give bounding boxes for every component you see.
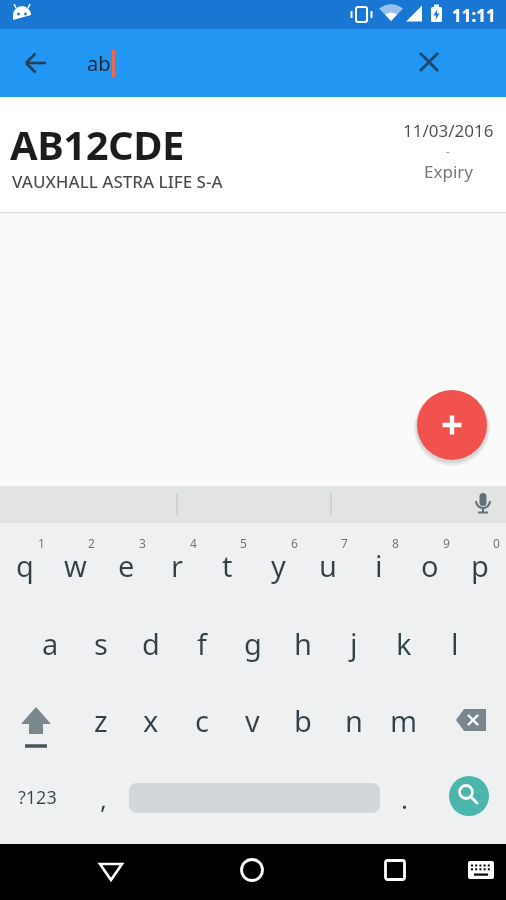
button[interactable] [371, 846, 419, 894]
staticText: 11:11 [452, 4, 496, 27]
button[interactable] [417, 390, 487, 460]
button[interactable]: h [278, 607, 328, 679]
staticText: k [396, 624, 412, 663]
staticText: f [197, 624, 207, 663]
staticText: t [222, 546, 233, 585]
staticText: m [390, 701, 418, 740]
staticText: r [171, 546, 183, 585]
button[interactable]: s [76, 607, 126, 679]
staticText: q [16, 546, 34, 585]
staticText: 3 [139, 535, 146, 551]
staticText: b [294, 701, 312, 740]
staticText: . [401, 781, 408, 816]
button[interactable]: o [405, 529, 455, 601]
button[interactable]: e [101, 529, 151, 601]
staticText: 9 [443, 535, 450, 551]
button[interactable]: a [25, 607, 75, 679]
staticText: ab [87, 50, 111, 77]
button[interactable]: y [253, 529, 303, 601]
staticText: 6 [291, 535, 298, 551]
staticText: - [446, 143, 450, 157]
staticText: 7 [341, 535, 348, 551]
staticText: u [319, 546, 337, 585]
staticText: i [375, 546, 383, 585]
button[interactable] [449, 776, 489, 816]
button[interactable]: . [382, 766, 426, 830]
button[interactable]: f [177, 607, 227, 679]
button[interactable]: n [329, 684, 379, 756]
button[interactable] [445, 685, 497, 757]
button[interactable]: x [126, 684, 176, 756]
staticText: 4 [190, 535, 197, 551]
staticText: 11/03/2016 [403, 119, 494, 142]
staticText: h [294, 624, 312, 663]
button[interactable]: d [126, 607, 176, 679]
button[interactable]: v [227, 684, 277, 756]
staticText: o [421, 546, 439, 585]
staticText: v [245, 701, 260, 740]
button[interactable] [228, 846, 276, 894]
button[interactable]: u [303, 529, 353, 601]
staticText: ?123 [18, 785, 57, 810]
button[interactable]: c [177, 684, 227, 756]
staticText: AB12CDE [10, 117, 184, 165]
button[interactable]: i [354, 529, 404, 601]
staticText: p [471, 546, 489, 585]
button[interactable] [12, 39, 60, 87]
staticText: z [94, 701, 108, 740]
button[interactable] [87, 846, 135, 894]
staticText: j [350, 624, 358, 663]
button[interactable]: j [329, 607, 379, 679]
button[interactable]: l [430, 607, 480, 679]
staticText: n [345, 701, 363, 740]
button[interactable]: z [76, 684, 126, 756]
staticText: 8 [392, 535, 399, 551]
staticText: 0 [493, 535, 500, 551]
button[interactable] [457, 846, 505, 894]
button[interactable]: , [81, 766, 125, 830]
staticText: w [64, 546, 87, 585]
button[interactable] [405, 39, 453, 87]
button[interactable]: t [202, 529, 252, 601]
button[interactable]: g [228, 607, 278, 679]
staticText: Expiry [424, 160, 473, 183]
staticText: 2 [88, 535, 95, 551]
staticText: g [244, 624, 262, 663]
button[interactable]: k [379, 607, 429, 679]
staticText: e [118, 546, 135, 585]
staticText: d [142, 624, 160, 663]
button[interactable]: m [379, 684, 429, 756]
staticText: c [195, 701, 209, 740]
button[interactable]: b [278, 684, 328, 756]
staticText: l [451, 624, 459, 663]
button[interactable]: AB12CDE [0, 97, 506, 212]
staticText: y [271, 546, 286, 585]
staticText: VAUXHALL ASTRA LIFE S-A [12, 170, 223, 193]
button[interactable] [10, 685, 62, 757]
staticText: s [94, 624, 108, 663]
button[interactable]: q [0, 529, 50, 601]
button[interactable]: ?123 [4, 765, 70, 829]
button[interactable]: w [50, 529, 100, 601]
staticText: , [100, 781, 107, 816]
button[interactable]: r [152, 529, 202, 601]
staticText: a [42, 624, 59, 663]
staticText: x [143, 701, 159, 740]
button[interactable]: p [455, 529, 505, 601]
staticText: 1 [38, 535, 45, 551]
staticText: 5 [240, 535, 247, 551]
